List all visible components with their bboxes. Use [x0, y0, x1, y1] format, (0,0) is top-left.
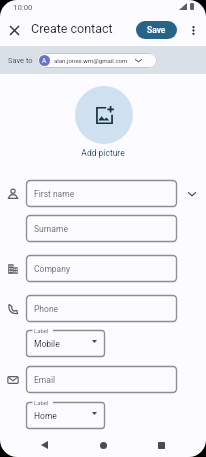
staticText: Home	[34, 411, 57, 421]
button[interactable]: More options	[183, 20, 203, 40]
staticText: Phone	[34, 304, 59, 314]
button[interactable]: Back	[32, 433, 56, 457]
button[interactable]: Label	[26, 402, 105, 429]
staticText: Label	[34, 327, 49, 334]
button[interactable]: First name	[26, 180, 177, 207]
staticText: Save	[147, 25, 166, 35]
staticText: Company	[34, 264, 70, 274]
button[interactable]: Add picture	[75, 86, 133, 144]
staticText: alan.jones.wm@gmail.com	[54, 57, 128, 64]
staticText: Save to	[8, 56, 33, 65]
button[interactable]: A	[37, 53, 157, 68]
button[interactable]: Home	[91, 433, 115, 457]
button[interactable]: Label	[26, 330, 105, 357]
button[interactable]: Save	[136, 21, 177, 39]
staticText: Surname	[34, 224, 68, 234]
staticText: Create contact	[31, 21, 113, 36]
staticText: Add picture	[0, 148, 206, 158]
button[interactable]: Expand name fields	[183, 185, 200, 202]
button[interactable]: Recents	[149, 433, 173, 457]
staticText: Label	[34, 399, 49, 406]
button[interactable]: Surname	[26, 215, 177, 242]
staticText: 10:00	[13, 3, 33, 12]
button[interactable]: Company	[26, 255, 177, 282]
button[interactable]: Phone	[26, 295, 177, 322]
staticText: First name	[34, 189, 75, 199]
button[interactable]: Email	[26, 366, 177, 393]
staticText: A	[42, 57, 47, 65]
button[interactable]: Close	[4, 20, 25, 41]
staticText: Email	[34, 375, 56, 385]
staticText: Mobile	[34, 339, 60, 349]
